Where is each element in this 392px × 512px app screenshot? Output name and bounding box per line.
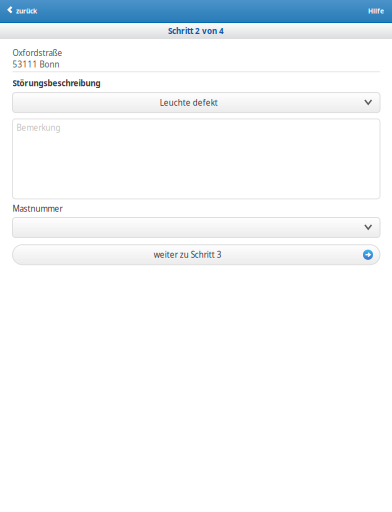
staticText: Hilfe xyxy=(368,7,384,15)
button[interactable]: Bemerkung xyxy=(12,119,380,199)
button[interactable]: Störungsbeschreibung: Leuchte defekt xyxy=(12,93,380,113)
staticText: Mastnummer xyxy=(12,203,62,214)
staticText: Oxfordstraße xyxy=(12,47,62,58)
staticText: 53111 Bonn xyxy=(12,59,59,70)
staticText: Schritt 2 von 4 xyxy=(168,26,224,36)
button[interactable]: Mastnummer auswählen xyxy=(12,217,380,237)
staticText: Leuchte defekt xyxy=(160,97,218,108)
staticText: weiter zu Schritt 3 xyxy=(154,249,222,260)
staticText: zurück xyxy=(16,7,37,15)
button[interactable]: weiter zu Schritt 3 xyxy=(12,245,380,265)
staticText: Bemerkung xyxy=(16,122,60,133)
button[interactable]: Hilfe xyxy=(368,0,392,22)
staticText: Störungsbeschreibung xyxy=(12,78,100,88)
button[interactable]: zurück xyxy=(0,0,37,22)
